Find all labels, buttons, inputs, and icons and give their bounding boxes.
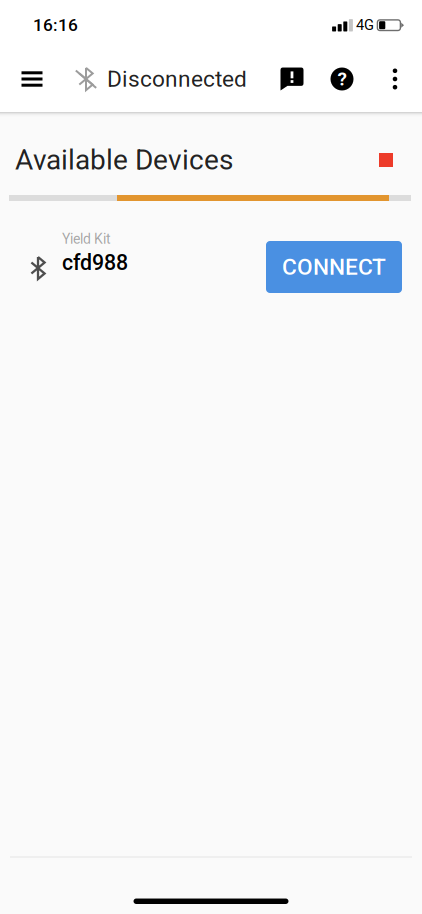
staticText: CONNECT bbox=[282, 254, 386, 280]
staticText: 16:16 bbox=[33, 15, 78, 35]
button[interactable]: More options bbox=[375, 46, 415, 112]
staticText: Yield Kit bbox=[62, 231, 111, 247]
button[interactable]: Help bbox=[320, 46, 364, 112]
staticText: ? bbox=[337, 68, 346, 90]
staticText: Disconnected bbox=[107, 66, 247, 92]
staticText: 4G bbox=[356, 16, 374, 34]
staticText: Available Devices bbox=[15, 144, 233, 176]
button[interactable]: Send feedback bbox=[270, 46, 314, 112]
button[interactable]: Open navigation menu bbox=[8, 46, 56, 112]
button[interactable]: CONNECT bbox=[266, 241, 402, 293]
staticText: cfd988 bbox=[62, 250, 128, 275]
button[interactable]: Stop scanning bbox=[364, 138, 408, 182]
